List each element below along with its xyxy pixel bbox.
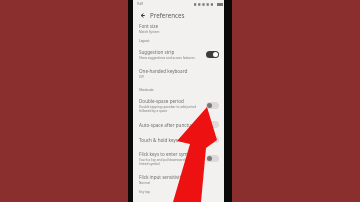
staticText: Flick keys to enter symbols bbox=[139, 151, 197, 157]
button[interactable]: Toggle off bbox=[206, 136, 219, 143]
staticText: Font size bbox=[139, 23, 158, 29]
button[interactable]: One-handed keyboard bbox=[133, 64, 224, 83]
button[interactable]: Flick keys to enter symbols bbox=[133, 147, 224, 170]
button[interactable]: Toggle on bbox=[206, 51, 219, 58]
staticText: Shortcuts bbox=[139, 88, 154, 92]
staticText: Flick input sensitivity bbox=[139, 174, 184, 180]
staticText: Auto-space after punctuation bbox=[139, 122, 203, 128]
button[interactable]: Double-space period bbox=[133, 94, 224, 117]
button[interactable]: Toggle off bbox=[206, 155, 219, 162]
button[interactable]: Auto-space after punctuation bbox=[133, 117, 224, 132]
button[interactable]: Touch & hold keys for symbols bbox=[133, 132, 224, 147]
staticText: Show suggestions and access features bbox=[139, 56, 195, 60]
staticText: Match System bbox=[139, 30, 160, 34]
staticText: Layout bbox=[139, 39, 150, 43]
staticText: 9:41 bbox=[137, 2, 144, 6]
staticText: Suggestion strip bbox=[139, 49, 175, 55]
staticText: Off bbox=[139, 75, 144, 79]
staticText: Double-space period bbox=[139, 98, 184, 104]
button[interactable]: Toggle off bbox=[206, 121, 219, 128]
button[interactable]: Toggle off bbox=[206, 102, 219, 109]
staticText: Key tap bbox=[139, 190, 151, 194]
staticText: Touch a key and pull downward to enter i… bbox=[139, 158, 202, 166]
button[interactable]: Suggestion strip bbox=[133, 45, 224, 64]
staticText: Touch & hold keys for symbols bbox=[139, 137, 203, 143]
staticText: One-handed keyboard bbox=[139, 68, 188, 74]
button[interactable]: Flick input sensitivity bbox=[133, 170, 224, 189]
staticText: Normal bbox=[139, 181, 150, 185]
staticText: Double tapping spacebar to add period fo… bbox=[139, 105, 197, 113]
button[interactable]: Back bbox=[137, 10, 147, 20]
staticText: Preferences bbox=[150, 11, 185, 19]
